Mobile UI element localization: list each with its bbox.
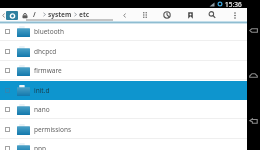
button[interactable]: Recents <box>248 115 259 126</box>
staticText: permissions <box>34 125 72 134</box>
button[interactable]: system <box>43 10 72 19</box>
staticText: firmware <box>34 66 62 75</box>
button[interactable]: permissions <box>0 120 247 139</box>
staticText: / <box>33 10 36 19</box>
button[interactable]: History <box>161 8 173 22</box>
staticText: nano <box>34 105 50 114</box>
button[interactable]: Search <box>206 8 218 22</box>
staticText: dhcpcd <box>34 47 57 56</box>
staticText: etc <box>79 10 90 19</box>
staticText: system <box>48 10 72 19</box>
button[interactable]: Back <box>0 9 8 21</box>
button[interactable]: / <box>33 10 36 19</box>
button[interactable]: dhcpcd <box>0 42 247 61</box>
button[interactable]: nano <box>0 100 247 119</box>
button[interactable]: Back <box>248 25 259 36</box>
button[interactable]: Storage <box>6 11 18 20</box>
button[interactable]: ppp <box>0 139 247 150</box>
button[interactable]: Apps <box>139 8 151 22</box>
button[interactable]: Collapse <box>118 8 130 22</box>
staticText: init.d <box>34 86 50 95</box>
button[interactable]: etc <box>74 10 90 19</box>
button[interactable]: firmware <box>0 61 247 80</box>
button[interactable]: Home <box>248 70 259 81</box>
staticText: ppp <box>34 144 46 150</box>
staticText: bluetooth <box>34 27 64 36</box>
button[interactable]: init.d <box>0 81 247 100</box>
staticText: 15:36 <box>225 0 242 8</box>
button[interactable]: More options <box>229 8 241 22</box>
button[interactable]: Root access <box>19 9 30 21</box>
button[interactable]: bluetooth <box>0 22 247 41</box>
button[interactable]: Bookmarks <box>184 8 196 22</box>
